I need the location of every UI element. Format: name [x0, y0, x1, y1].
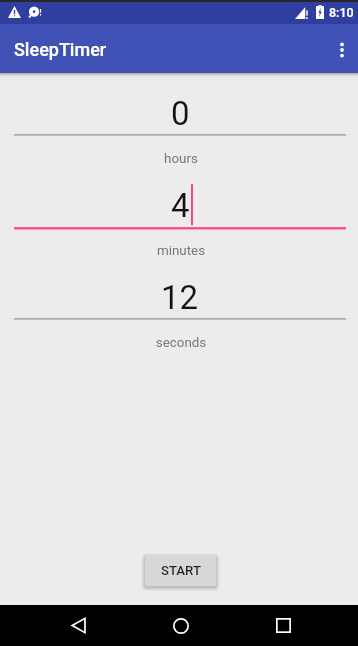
- staticText: hours: [2, 151, 358, 167]
- button[interactable]: More options: [314, 24, 358, 73]
- staticText: minutes: [2, 243, 358, 259]
- button[interactable]: 0: [0, 92, 358, 158]
- button[interactable]: Back: [51, 605, 105, 646]
- staticText: 4: [171, 186, 190, 225]
- staticText: 0: [171, 94, 190, 133]
- staticText: SleepTimer: [14, 39, 107, 60]
- staticText: 8:10: [329, 5, 354, 20]
- staticText: 12: [161, 278, 199, 317]
- button[interactable]: 12: [0, 276, 358, 342]
- staticText: seconds: [2, 335, 358, 351]
- button[interactable]: Recent apps: [256, 605, 310, 646]
- staticText: START: [161, 563, 201, 578]
- button[interactable]: 4: [0, 184, 358, 250]
- button[interactable]: START: [145, 554, 216, 586]
- button[interactable]: Home: [154, 605, 208, 646]
